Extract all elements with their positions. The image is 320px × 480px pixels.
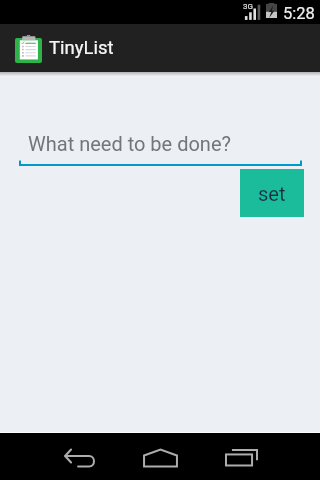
staticText: set xyxy=(258,182,286,205)
button[interactable]: set xyxy=(240,169,304,217)
staticText: 5:28 xyxy=(283,4,315,23)
staticText: TinyList xyxy=(49,37,114,59)
button[interactable]: Home xyxy=(138,433,182,480)
button[interactable]: Back xyxy=(59,433,101,480)
staticText: What need to be done? xyxy=(28,132,231,155)
staticText: 3G xyxy=(243,2,253,11)
button[interactable]: Recent apps xyxy=(220,433,262,480)
